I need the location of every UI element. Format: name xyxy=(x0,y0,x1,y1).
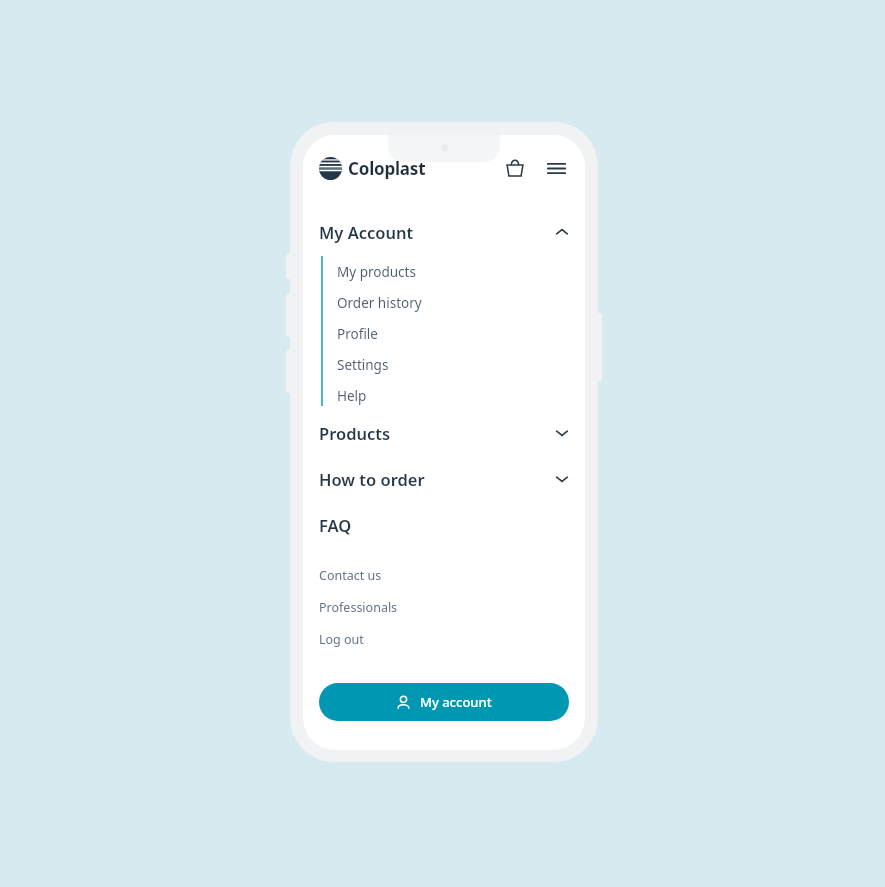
button[interactable]: Menu xyxy=(541,153,571,183)
button[interactable]: Order history xyxy=(337,287,585,318)
staticText: Professionals xyxy=(319,599,398,616)
button[interactable]: FAQ xyxy=(303,509,585,541)
staticText: Settings xyxy=(337,356,389,374)
button[interactable]: My account xyxy=(319,683,569,721)
staticText: Log out xyxy=(319,631,364,648)
button[interactable]: Contact us xyxy=(303,564,585,586)
button[interactable]: Help xyxy=(337,380,585,411)
staticText: Help xyxy=(337,387,367,405)
button[interactable]: How to order xyxy=(303,463,585,495)
button[interactable]: Basket xyxy=(500,153,530,183)
staticText: How to order xyxy=(319,468,425,490)
staticText: Coloplast xyxy=(348,157,426,180)
button[interactable]: My Account xyxy=(303,216,585,248)
staticText: My account xyxy=(420,693,492,711)
staticText: Order history xyxy=(337,294,422,312)
staticText: Products xyxy=(319,422,391,444)
staticText: FAQ xyxy=(319,514,352,536)
button[interactable]: Log out xyxy=(303,628,585,650)
button[interactable]: My products xyxy=(337,256,585,287)
staticText: Profile xyxy=(337,325,378,343)
button[interactable]: Profile xyxy=(337,318,585,349)
staticText: Contact us xyxy=(319,567,382,584)
button[interactable]: Professionals xyxy=(303,596,585,618)
staticText: My Account xyxy=(319,221,414,243)
button[interactable]: Products xyxy=(303,417,585,449)
button[interactable]: Coloplast xyxy=(319,157,426,180)
button[interactable]: Settings xyxy=(337,349,585,380)
staticText: My products xyxy=(337,263,416,281)
